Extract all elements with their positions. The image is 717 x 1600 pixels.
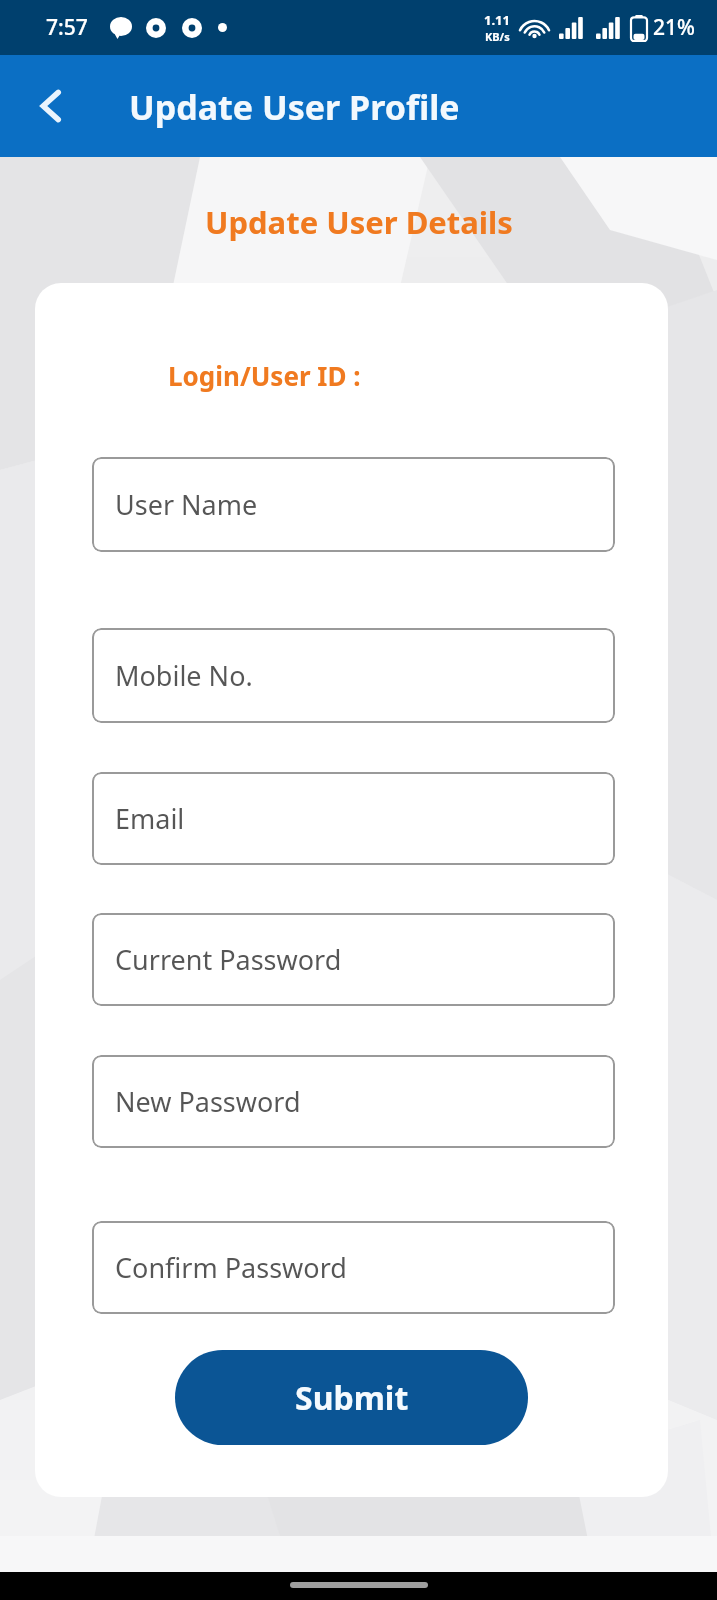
staticText: User Name <box>115 486 258 523</box>
staticText: Update User Details <box>205 201 513 243</box>
staticText: New Password <box>115 1083 301 1120</box>
button[interactable]: User Name <box>92 457 615 552</box>
staticText: Update User Profile <box>129 84 460 130</box>
button[interactable]: Confirm Password <box>92 1221 615 1314</box>
staticText: Email <box>115 800 185 837</box>
staticText: Submit <box>295 1376 409 1420</box>
staticText: KB/s <box>485 29 510 44</box>
staticText: 21% <box>653 13 695 42</box>
button[interactable]: Submit <box>175 1350 528 1445</box>
button[interactable]: Back <box>22 77 80 135</box>
staticText: Mobile No. <box>115 657 253 694</box>
staticText: 1.11 <box>484 11 510 29</box>
staticText: Current Password <box>115 941 342 978</box>
button[interactable]: Email <box>92 772 615 865</box>
staticText: Confirm Password <box>115 1249 347 1286</box>
button[interactable]: Mobile No. <box>92 628 615 723</box>
staticText: Login/User ID : <box>168 358 361 393</box>
staticText: 7:57 <box>46 13 88 42</box>
button[interactable]: New Password <box>92 1055 615 1148</box>
button[interactable]: Current Password <box>92 913 615 1006</box>
